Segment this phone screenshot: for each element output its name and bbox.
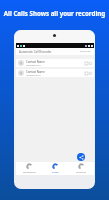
button[interactable]: Share xyxy=(77,153,85,161)
button[interactable]: Contact Name xyxy=(16,59,94,67)
button[interactable]: Saved xyxy=(42,162,68,175)
staticText: SETTINGS xyxy=(80,50,91,53)
button[interactable]: Contacts xyxy=(68,162,94,175)
staticText: Yesterday 02:11 xyxy=(26,74,42,77)
staticText: Recordings xyxy=(23,170,36,173)
button[interactable]: Recordings xyxy=(16,162,42,175)
staticText: Contact Name xyxy=(26,70,45,74)
staticText: Saved xyxy=(52,170,59,173)
button[interactable]: Contact Name xyxy=(16,69,94,77)
staticText: Automatic Call Recorder xyxy=(19,50,52,54)
staticText: Contacts xyxy=(76,170,86,173)
staticText: Contact Name xyxy=(26,60,45,64)
staticText: Yesterday 02:11 xyxy=(26,64,42,67)
staticText: All Calls Shows all your recording xyxy=(0,9,109,17)
